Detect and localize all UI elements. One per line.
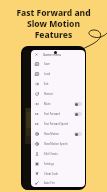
other: Exit (35, 82, 39, 86)
staticText: Load (44, 72, 50, 76)
staticText: Edit Cheats (44, 152, 58, 156)
staticText: Fast Forward Speed (44, 122, 68, 126)
other: Save (35, 62, 39, 66)
other: Fast Forward Speed (35, 122, 39, 126)
other: Close menu (35, 53, 38, 56)
button[interactable]: Restart (35, 89, 82, 99)
button[interactable]: Cheat Code (35, 169, 82, 179)
staticText: Save (44, 62, 50, 66)
other: Settings (35, 162, 39, 166)
other: Slow Motion (35, 132, 39, 136)
button[interactable]: Exit (35, 79, 82, 89)
button[interactable]: Fast Forward switch (74, 112, 82, 116)
staticText: Fast Forward (44, 112, 60, 116)
button[interactable]: Mute switch (74, 102, 82, 106)
button[interactable]: Slow Motion (35, 129, 82, 139)
other: Edit Cheats (35, 152, 39, 156)
button[interactable]: Close menu (35, 50, 82, 59)
staticText: Mute (44, 102, 51, 106)
other: Fast Forward (35, 112, 39, 116)
staticText: Slow Motion Speed (44, 142, 68, 146)
other: Mute (35, 102, 39, 106)
other: Cheat Code (35, 172, 39, 176)
button[interactable]: Slow Motion Speed (35, 139, 82, 149)
button[interactable]: Fast Forward Speed (35, 119, 82, 129)
staticText: Settings (44, 162, 54, 166)
button[interactable]: Fast Forward (35, 109, 82, 119)
other: Restart (35, 92, 39, 96)
button[interactable]: Mute (35, 99, 82, 109)
other: Load (35, 72, 39, 76)
staticText: Slow Motion (44, 132, 60, 136)
staticText: Exit (44, 82, 49, 86)
button[interactable]: Auto Fire (35, 179, 82, 187)
button[interactable]: Load (35, 69, 82, 79)
button[interactable]: Settings (35, 159, 82, 169)
button[interactable]: Slow Motion switch (74, 132, 82, 136)
button[interactable]: Edit Cheats (35, 149, 82, 159)
other: Slow Motion Speed (35, 142, 39, 146)
button[interactable]: Save (35, 59, 82, 69)
staticText: Cheat Code (44, 172, 59, 176)
staticText: Auto Fire (44, 181, 55, 185)
staticText: Restart (44, 92, 53, 96)
staticText: Game menu (43, 53, 62, 57)
staticText: Fast Forward and Slow Motion Features (0, 7, 107, 40)
other: Auto Fire (35, 181, 39, 185)
